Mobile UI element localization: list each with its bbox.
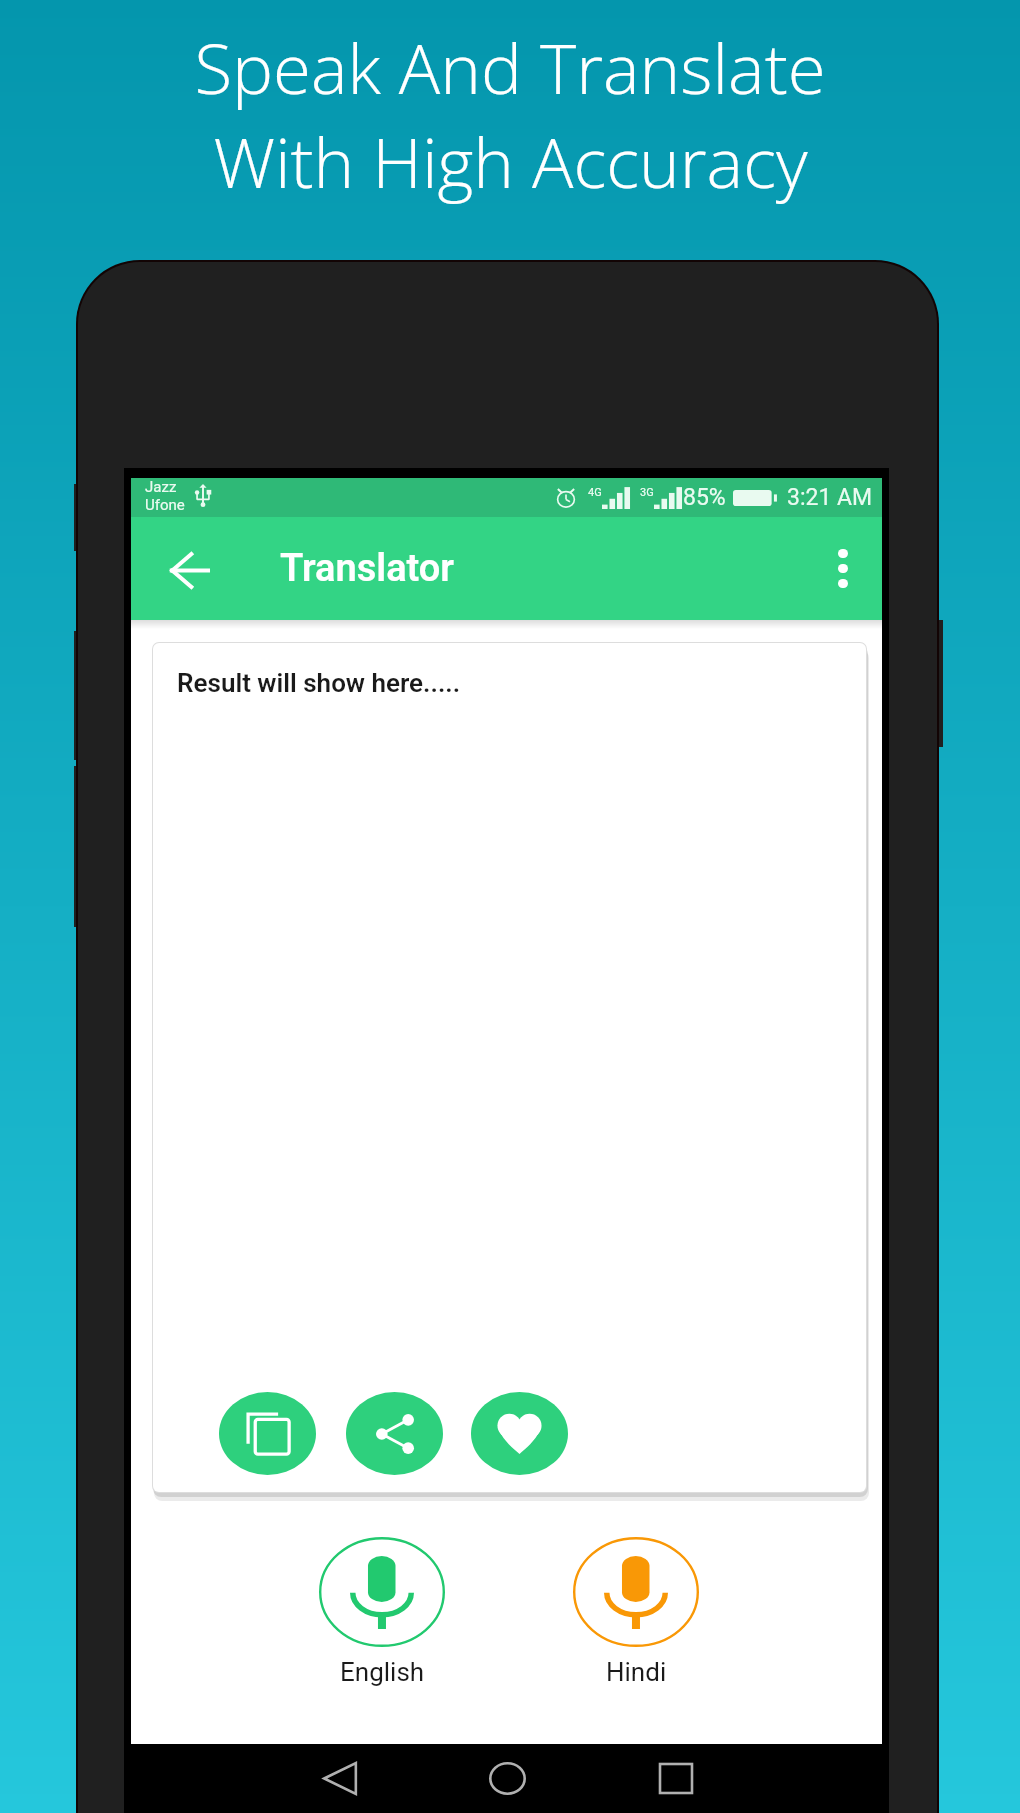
staticText: With High Accuracy [213, 114, 808, 208]
staticText: 85% [683, 484, 726, 511]
staticText: Translator [280, 546, 455, 591]
staticText: 4G [588, 486, 602, 499]
staticText: English [340, 1657, 425, 1687]
staticText: Speak And Translate [194, 20, 826, 114]
button[interactable]: Back [313, 1752, 367, 1804]
staticText: Ufone [145, 496, 185, 514]
button[interactable]: English [319, 1537, 445, 1687]
button[interactable]: Copy [219, 1392, 316, 1475]
button[interactable]: Share [346, 1392, 443, 1475]
button[interactable]: More options [817, 542, 869, 594]
staticText: Result will show here..... [177, 668, 461, 698]
button[interactable]: Hindi [573, 1537, 699, 1687]
staticText: 3G [640, 486, 654, 499]
button[interactable]: Add to favourites [471, 1392, 568, 1475]
button[interactable]: Recent apps [649, 1752, 703, 1804]
staticText: Jazz [145, 478, 177, 496]
button[interactable]: Home [480, 1752, 534, 1804]
staticText: Hindi [606, 1657, 667, 1687]
staticText: 3:21 AM [787, 484, 873, 511]
button[interactable]: Navigate up [165, 546, 213, 594]
